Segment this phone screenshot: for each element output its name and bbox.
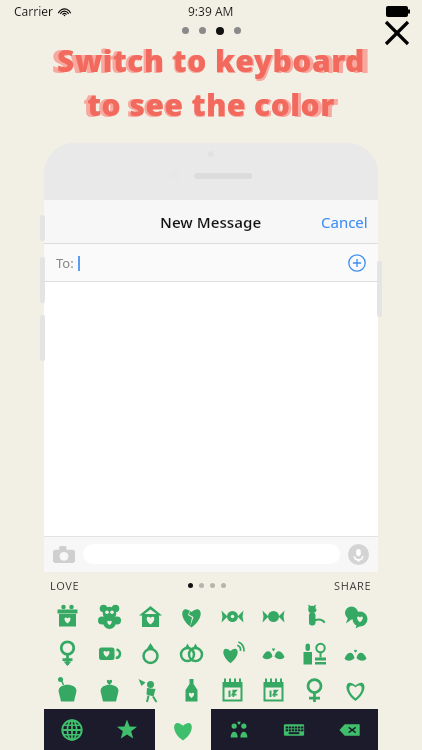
button[interactable]: VENUS_M — [46, 635, 88, 672]
staticText: 9:39 AM — [188, 3, 234, 19]
button[interactable]: GIFT — [46, 598, 88, 635]
button[interactable]: Add contact — [348, 254, 366, 272]
button[interactable]: CUPCAKE2 — [88, 672, 130, 709]
button[interactable]: LAMPS — [294, 635, 335, 672]
button[interactable]: HEART_V — [335, 672, 376, 709]
button[interactable]: CANDY2 — [253, 598, 294, 635]
button[interactable]: Cancel — [321, 212, 368, 232]
button[interactable]: HEART_WIFI — [212, 635, 253, 672]
staticText: To: — [56, 254, 74, 272]
button[interactable]: Keyboard — [266, 709, 322, 750]
button[interactable]: BOTTLE — [171, 672, 212, 709]
button[interactable]: CAT — [294, 598, 335, 635]
button[interactable]: Globe — [44, 709, 99, 750]
staticText: Switch to keyboard — [57, 40, 365, 81]
button[interactable]: Voice input — [348, 544, 369, 565]
button[interactable]: VENUS — [294, 672, 335, 709]
button[interactable]: Favorites — [99, 709, 155, 750]
button[interactable]: Camera — [53, 546, 75, 563]
button[interactable]: BIRDS2 — [335, 635, 376, 672]
button[interactable]: Contacts — [211, 709, 266, 750]
button[interactable]: RING1 — [130, 635, 171, 672]
button[interactable]: LOVE — [50, 578, 80, 593]
staticText: LOVE — [50, 578, 80, 593]
button[interactable]: CAL2 — [253, 672, 294, 709]
button[interactable]: BIRDS — [253, 635, 294, 672]
staticText: Carrier — [14, 3, 54, 19]
staticText: Switch to keyboard — [52, 40, 370, 82]
button[interactable]: BROKEN — [171, 598, 212, 635]
button[interactable]: CUPCAKE1 — [46, 672, 88, 709]
staticText: New Message — [160, 212, 262, 232]
button[interactable]: CANDY1 — [212, 598, 253, 635]
button[interactable]: MUG — [88, 635, 130, 672]
button[interactable]: HOUSE — [130, 598, 171, 635]
button[interactable]: BEAR — [88, 598, 130, 635]
staticText: to see the color — [87, 84, 335, 125]
button[interactable]: CUPID — [130, 672, 171, 709]
button[interactable]: RINGS — [171, 635, 212, 672]
button[interactable]: SHARE — [334, 578, 372, 593]
staticText: Cancel — [321, 212, 368, 232]
staticText: to see the color — [83, 84, 339, 126]
button[interactable]: CAL1 — [212, 672, 253, 709]
staticText: SHARE — [334, 578, 372, 593]
button[interactable]: Delete — [322, 709, 378, 750]
button[interactable]: CHAT — [335, 598, 376, 635]
button[interactable]: Heart — [155, 709, 211, 750]
